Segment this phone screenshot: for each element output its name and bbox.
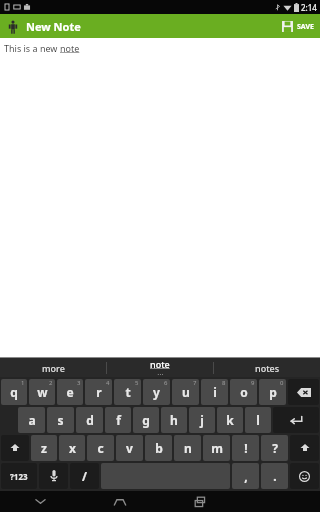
staticText: 9	[251, 379, 255, 387]
staticText: /	[82, 468, 87, 484]
button[interactable]: d	[76, 407, 103, 433]
staticText: m	[211, 440, 223, 456]
staticText: notes	[255, 362, 280, 374]
button[interactable]: w	[29, 379, 55, 405]
button[interactable]: n	[174, 435, 201, 461]
staticText: 2	[49, 379, 53, 387]
button[interactable]: b	[145, 435, 172, 461]
button[interactable]: Home	[80, 491, 160, 512]
staticText: d	[86, 412, 94, 428]
staticText: q	[10, 384, 18, 400]
staticText: 2:14	[301, 2, 317, 13]
button[interactable]: !	[232, 435, 259, 461]
staticText: x	[69, 440, 76, 456]
staticText: e	[66, 384, 74, 400]
staticText: b	[155, 440, 163, 456]
staticText: i	[213, 384, 217, 400]
staticText: 0	[280, 379, 284, 387]
button[interactable]: g	[133, 407, 159, 433]
staticText: g	[142, 412, 150, 428]
staticText: ⋯	[157, 370, 163, 377]
button[interactable]: l	[245, 407, 271, 433]
staticText: ?	[272, 440, 278, 456]
staticText: note	[60, 42, 80, 54]
button[interactable]: v	[116, 435, 143, 461]
button[interactable]: a	[18, 407, 45, 433]
button[interactable]: more	[0, 358, 106, 377]
staticText: o	[240, 384, 248, 400]
staticText: s	[57, 412, 64, 428]
staticText: This is a new	[4, 42, 60, 54]
staticText: New Note	[26, 19, 81, 34]
staticText: 3	[77, 379, 81, 387]
staticText: l	[256, 412, 260, 428]
button[interactable]: This is a new	[0, 38, 320, 357]
staticText: 1	[21, 379, 25, 387]
button[interactable]: Voice input	[39, 463, 68, 489]
staticText: v	[126, 440, 133, 456]
staticText: SAVE	[297, 22, 314, 32]
button[interactable]: Emoji	[290, 463, 319, 489]
button[interactable]: q	[1, 379, 27, 405]
button[interactable]: c	[87, 435, 114, 461]
button[interactable]: ?	[261, 435, 288, 461]
staticText: 5	[135, 379, 139, 387]
button[interactable]: SAVE	[279, 18, 316, 35]
button[interactable]: Enter	[273, 407, 319, 433]
staticText: n	[184, 440, 192, 456]
button[interactable]: h	[161, 407, 187, 433]
staticText: c	[97, 440, 104, 456]
button[interactable]: note	[107, 358, 213, 377]
staticText: u	[182, 384, 190, 400]
staticText: j	[200, 412, 204, 428]
staticText: a	[28, 412, 36, 428]
button[interactable]: j	[189, 407, 215, 433]
staticText: z	[41, 440, 47, 456]
staticText: t	[125, 384, 131, 400]
staticText: 6	[164, 379, 168, 387]
button[interactable]: Shift	[290, 435, 319, 461]
button[interactable]: r	[85, 379, 112, 405]
button[interactable]: ,	[232, 463, 259, 489]
button[interactable]: f	[105, 407, 131, 433]
staticText: w	[37, 384, 48, 400]
staticText: 8	[222, 379, 226, 387]
button[interactable]: s	[47, 407, 74, 433]
button[interactable]: o	[230, 379, 257, 405]
staticText: .	[273, 468, 277, 484]
staticText: p	[269, 384, 277, 400]
button[interactable]: i	[201, 379, 228, 405]
staticText: ,	[244, 468, 248, 484]
button[interactable]: y	[143, 379, 170, 405]
button[interactable]: Hide keyboard	[0, 491, 80, 512]
button[interactable]: Recent apps	[160, 491, 240, 512]
button[interactable]: Shift	[1, 435, 29, 461]
button[interactable]: Symbols	[1, 463, 37, 489]
button[interactable]: u	[172, 379, 199, 405]
button[interactable]: t	[114, 379, 141, 405]
button[interactable]: k	[217, 407, 243, 433]
staticText: 4	[106, 379, 110, 387]
button[interactable]: m	[203, 435, 230, 461]
button[interactable]: e	[57, 379, 83, 405]
staticText: more	[42, 362, 65, 374]
staticText: ?123	[10, 471, 28, 482]
staticText: h	[170, 412, 178, 428]
button[interactable]: Slash	[70, 463, 99, 489]
staticText: 7	[193, 379, 197, 387]
staticText: y	[153, 384, 160, 400]
button[interactable]: New Note	[6, 19, 81, 34]
staticText: f	[116, 412, 121, 428]
staticText: k	[226, 412, 234, 428]
button[interactable]: Backspace	[288, 379, 319, 405]
button[interactable]: x	[59, 435, 85, 461]
button[interactable]: notes	[214, 358, 320, 377]
staticText: r	[96, 384, 102, 400]
button[interactable]: .	[261, 463, 288, 489]
button[interactable]: z	[31, 435, 57, 461]
button[interactable]: p	[259, 379, 286, 405]
staticText: note	[150, 358, 170, 370]
staticText: !	[244, 440, 248, 456]
